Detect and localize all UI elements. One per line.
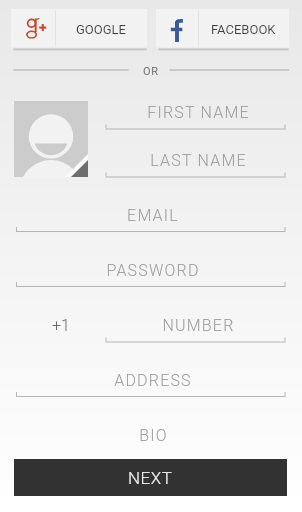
- button[interactable]: NUMBER: [108, 313, 289, 337]
- button[interactable]: ADDRESS: [17, 368, 289, 392]
- staticText: FIRST NAME: [147, 103, 250, 122]
- staticText: +1: [52, 316, 70, 335]
- button[interactable]: Choose profile photo: [14, 101, 88, 177]
- staticText: GOOGLE: [76, 22, 126, 37]
- button[interactable]: NEXT: [14, 459, 287, 496]
- staticText: BIO: [139, 426, 168, 445]
- staticText: NEXT: [128, 468, 173, 488]
- button[interactable]: Sign up with Google: [11, 9, 147, 49]
- button[interactable]: +1: [19, 313, 103, 337]
- staticText: NUMBER: [162, 316, 235, 335]
- staticText: EMAIL: [127, 206, 179, 225]
- button[interactable]: PASSWORD: [17, 258, 289, 282]
- button[interactable]: EMAIL: [17, 203, 289, 227]
- button[interactable]: LAST NAME: [108, 148, 289, 172]
- staticText: FACEBOOK: [211, 22, 276, 37]
- button[interactable]: FIRST NAME: [108, 100, 289, 124]
- staticText: PASSWORD: [106, 261, 200, 280]
- staticText: ADDRESS: [114, 371, 192, 390]
- button[interactable]: BIO: [17, 423, 289, 447]
- staticText: LAST NAME: [150, 151, 247, 170]
- button[interactable]: Sign up with Facebook: [156, 9, 289, 49]
- staticText: OR: [143, 65, 159, 78]
